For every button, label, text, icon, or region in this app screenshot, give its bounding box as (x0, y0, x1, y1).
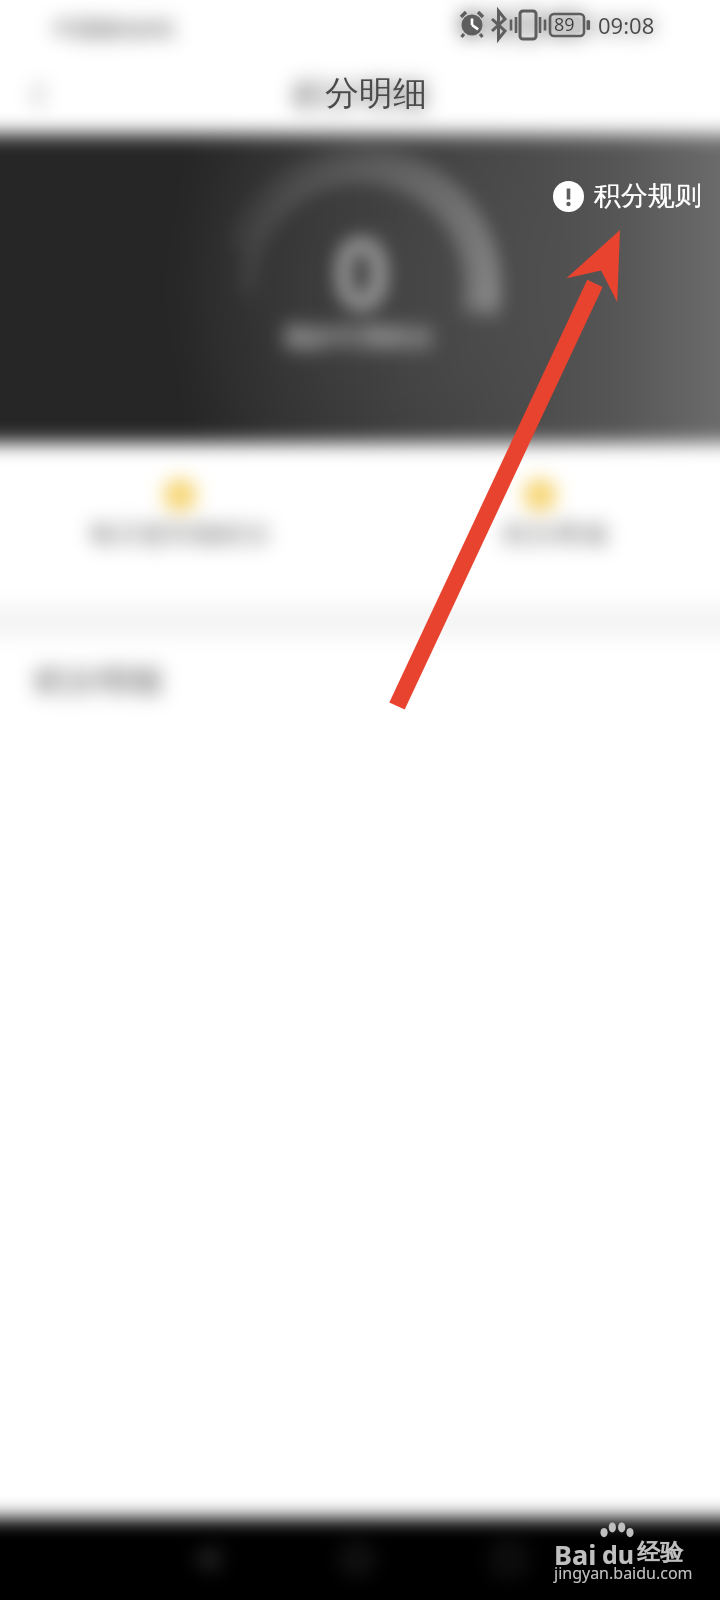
button[interactable]: 积分商城 (360, 443, 720, 605)
button[interactable]: Back (157, 1518, 253, 1600)
button[interactable]: 积分规则 (553, 179, 702, 213)
staticText: jingyan.baidu.com (554, 1562, 693, 1584)
staticText: 0 (335, 208, 388, 333)
button[interactable]: Home (309, 1518, 405, 1600)
staticText: 09:08 (598, 10, 655, 40)
staticText: 每日签到领积分 (89, 518, 271, 551)
staticText: 积分商城 (503, 518, 607, 551)
staticText: 分明细 (325, 72, 427, 115)
button[interactable]: 每日签到领积分 (0, 443, 360, 605)
button[interactable]: Recents (461, 1518, 557, 1600)
staticText: 09:08 (598, 10, 655, 40)
staticText: 积分明细 (34, 661, 162, 701)
staticText: 中国移动4G (53, 12, 175, 43)
staticText: 89 (554, 12, 575, 37)
staticText: du (602, 1537, 635, 1571)
staticText: 我的可用积分 (284, 322, 434, 353)
staticText: Bai (554, 1536, 597, 1573)
staticText: 积分明细 (292, 74, 428, 117)
staticText: 89 (554, 12, 575, 37)
staticText: 积分规则 (594, 179, 702, 213)
staticText: 经验 (637, 1538, 683, 1567)
button[interactable]: Back (0, 56, 76, 134)
